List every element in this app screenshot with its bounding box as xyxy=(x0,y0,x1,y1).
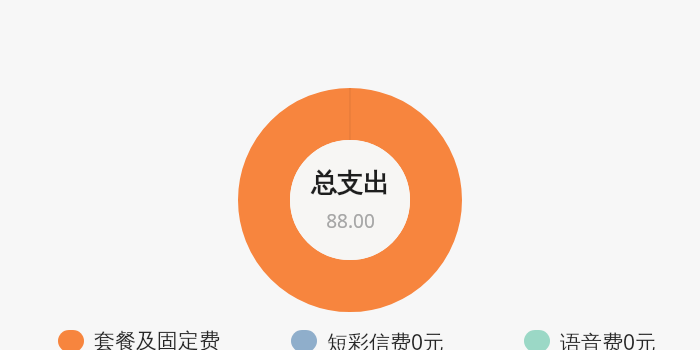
other: 语音费0元 xyxy=(524,330,550,350)
staticText: 总支出 xyxy=(311,167,389,200)
button[interactable]: 套餐及固定费88元 xyxy=(0,328,233,350)
staticText: 短彩信费0元 xyxy=(327,328,445,350)
staticText: 88.00 xyxy=(326,208,375,234)
other: 套餐及固定费88元 xyxy=(58,330,84,350)
button[interactable]: 语音费0元 xyxy=(466,328,700,350)
other: 短彩信费0元 xyxy=(291,330,317,350)
staticText: 语音费0元 xyxy=(560,328,657,350)
button[interactable]: 短彩信费0元 xyxy=(233,328,466,350)
staticText: 套餐及固定费88元 xyxy=(94,328,233,350)
